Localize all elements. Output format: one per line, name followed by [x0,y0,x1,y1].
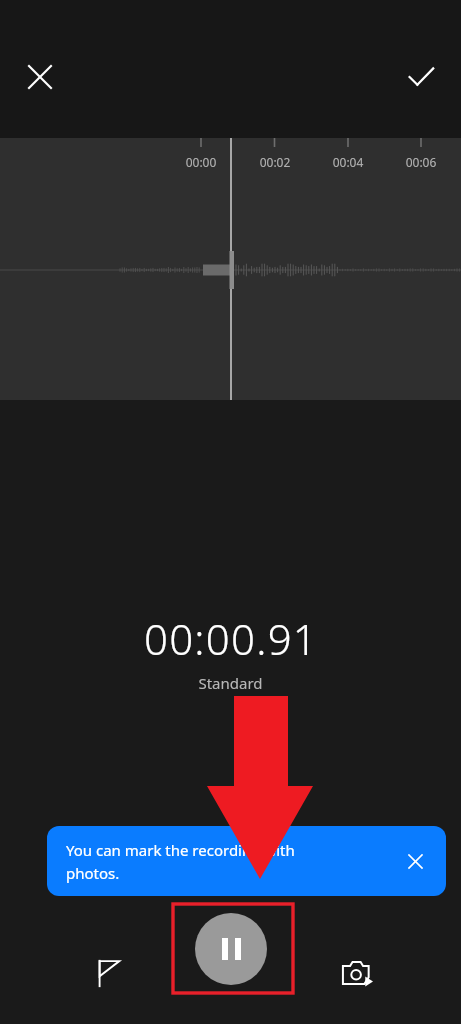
staticText: 00:00 [167,154,235,170]
staticText: 00:02 [241,154,309,170]
staticText: 00:00.91 [144,610,318,667]
staticText: 00:06 [387,154,455,170]
button[interactable]: Add marker [82,947,134,999]
button[interactable]: Close [14,51,66,103]
button[interactable]: Pause recording [195,913,267,985]
button[interactable]: Done [395,51,447,103]
staticText: 00:04 [314,154,382,170]
staticText: Standard [198,673,263,693]
button[interactable]: You can mark the recording with photos. [47,826,446,896]
button[interactable]: Take photo [331,947,383,999]
button[interactable]: Dismiss tip [398,844,432,878]
staticText: You can mark the recording with photos. [66,840,295,883]
